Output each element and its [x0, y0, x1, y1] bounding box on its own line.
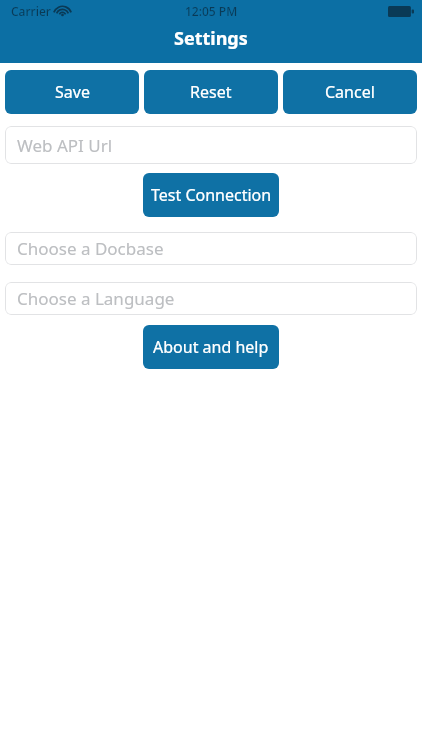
staticText: Carrier	[11, 3, 51, 19]
staticText: Test Connection	[151, 184, 272, 206]
staticText: Reset	[190, 81, 232, 103]
staticText: Save	[55, 81, 90, 103]
button[interactable]: Reset	[144, 70, 278, 114]
staticText: Choose a Docbase	[17, 237, 164, 260]
button[interactable]: Choose a Language	[5, 282, 417, 315]
button[interactable]: Choose a Docbase	[5, 232, 417, 265]
button[interactable]: Test Connection	[143, 173, 279, 217]
staticText: Cancel	[325, 81, 375, 103]
staticText: 12:05 PM	[185, 3, 238, 19]
staticText: Settings	[174, 26, 248, 51]
staticText: About and help	[153, 336, 269, 358]
button[interactable]: About and help	[143, 325, 279, 369]
staticText: Web API Url	[17, 134, 113, 157]
button[interactable]: Save	[5, 70, 139, 114]
button[interactable]: Web API Url	[5, 126, 417, 164]
staticText: Choose a Language	[17, 287, 175, 310]
button[interactable]: Cancel	[283, 70, 417, 114]
